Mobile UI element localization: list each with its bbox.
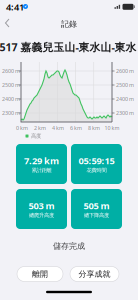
staticText: 記錄	[61, 19, 77, 29]
staticText: 0 km	[16, 124, 28, 132]
button[interactable]: 7.29 km	[16, 144, 67, 184]
staticText: 2400 m	[116, 95, 134, 103]
staticText: 花費時間	[86, 167, 106, 173]
staticText: 7.29 km	[24, 154, 59, 167]
staticText: 高度	[31, 133, 41, 139]
staticText: 累計距離	[31, 167, 51, 173]
staticText: 2600 m	[2, 67, 20, 75]
staticText: 2300 m	[2, 109, 20, 117]
staticText: 4:41	[6, 1, 24, 13]
staticText: 2 km	[34, 124, 46, 132]
staticText: 4 km	[52, 124, 64, 132]
staticText: 儲存完成	[53, 241, 85, 251]
staticText: 05:59:15	[78, 154, 114, 167]
staticText: 分享成就	[78, 269, 110, 279]
staticText: 2400 m	[2, 95, 20, 103]
staticText: 總爬升高度	[29, 212, 54, 218]
staticText: 10 km	[104, 124, 119, 132]
staticText: 2300 m	[116, 109, 134, 117]
staticText: 2600 m	[116, 67, 134, 75]
button[interactable]: 離開	[17, 266, 63, 281]
button[interactable]: 503 m	[16, 189, 67, 229]
staticText: 6 km	[70, 124, 82, 132]
button[interactable]: 分享成就	[70, 266, 119, 281]
button[interactable]: 505 m	[71, 189, 122, 229]
button[interactable]: Back	[0, 0, 138, 300]
staticText: 8 km	[88, 124, 100, 132]
staticText: 離開	[32, 269, 48, 279]
staticText: 517 嘉義兒玉山-東水山-東水	[0, 40, 136, 54]
staticText: 2500 m	[116, 81, 134, 89]
staticText: 2500 m	[2, 81, 20, 89]
button[interactable]: 05:59:15	[71, 144, 122, 184]
staticText: 總下降高度	[84, 212, 109, 218]
staticText: 505 m	[83, 199, 109, 212]
staticText: 503 m	[28, 199, 54, 212]
